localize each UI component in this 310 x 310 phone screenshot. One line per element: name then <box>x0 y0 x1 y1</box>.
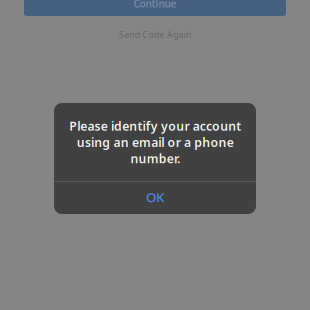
button[interactable]: OK <box>54 182 256 214</box>
staticText: Send Code Again <box>119 29 191 40</box>
staticText: OK <box>146 188 164 206</box>
button[interactable]: Send Code Again <box>95 29 215 40</box>
staticText: Please identify your account using an em… <box>69 118 241 167</box>
staticText: Continue <box>133 0 176 10</box>
button[interactable]: Continue <box>24 0 286 16</box>
